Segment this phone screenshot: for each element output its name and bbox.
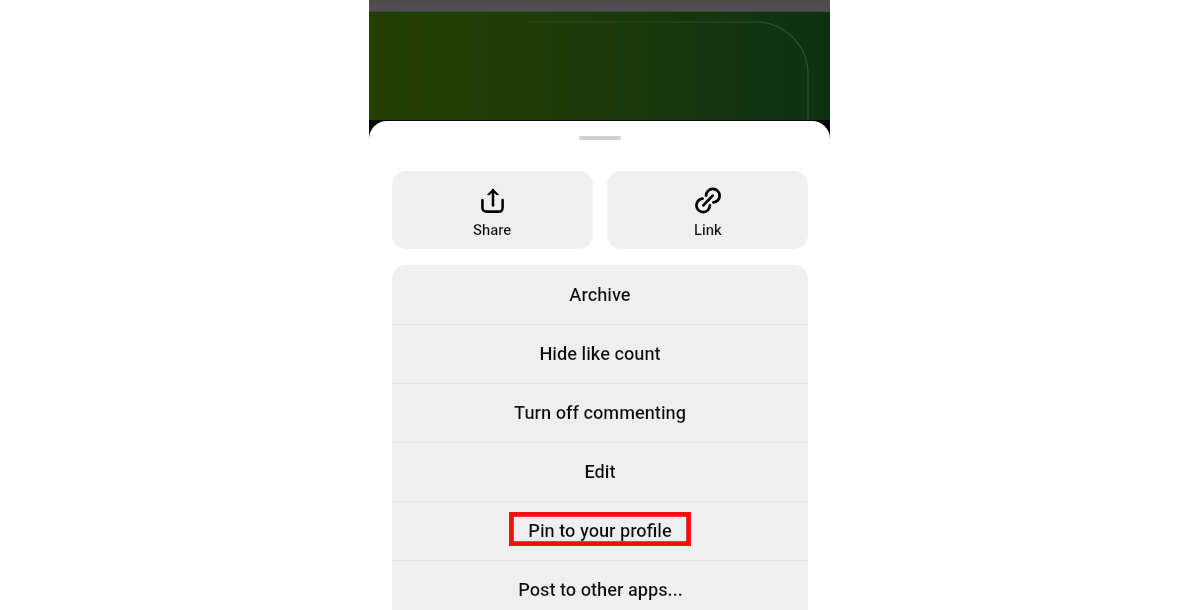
staticText: Edit <box>584 461 616 482</box>
staticText: Share <box>473 221 512 238</box>
button[interactable]: Share <box>392 171 593 249</box>
staticText: Post to other apps... <box>518 579 683 600</box>
button[interactable]: Edit <box>392 442 808 501</box>
button[interactable]: Hide like count <box>392 324 808 383</box>
button[interactable]: Pin to your profile <box>392 501 808 560</box>
button[interactable]: Link <box>607 171 808 249</box>
button[interactable]: Post to other apps... <box>392 560 808 610</box>
button[interactable]: Turn off commenting <box>392 383 808 442</box>
staticText: Archive <box>569 284 631 305</box>
staticText: Turn off commenting <box>514 402 686 423</box>
staticText: Link <box>694 221 722 238</box>
button[interactable]: Archive <box>392 265 808 324</box>
staticText: Pin to your profile <box>528 520 672 541</box>
staticText: Hide like count <box>539 343 661 364</box>
